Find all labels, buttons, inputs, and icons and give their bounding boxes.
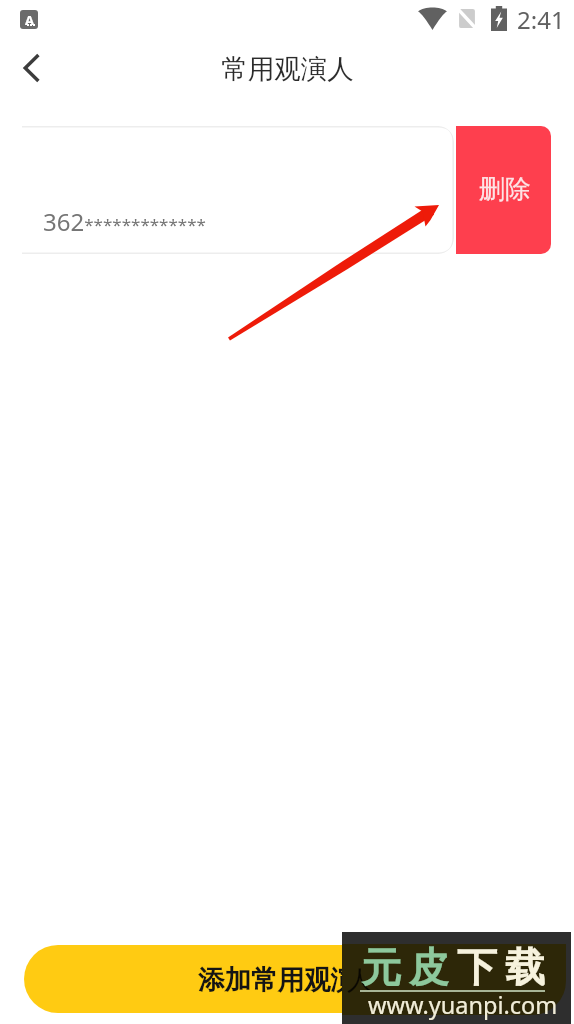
staticText: www.yuanpi.com bbox=[368, 989, 558, 1021]
button[interactable]: Back bbox=[0, 38, 62, 98]
staticText: 添加常用观演人 bbox=[198, 963, 384, 996]
staticText: 下载 bbox=[453, 942, 549, 992]
staticText: 2:41 bbox=[517, 3, 565, 36]
staticText: 362************* bbox=[43, 205, 206, 238]
button[interactable]: 添加常用观演人 bbox=[24, 945, 550, 1013]
staticText: 元皮 bbox=[357, 942, 453, 992]
staticText: 删除 bbox=[479, 173, 531, 206]
staticText: A bbox=[25, 11, 34, 29]
button[interactable]: 删除 bbox=[456, 126, 551, 254]
staticText: 人 bbox=[347, 964, 373, 997]
staticText: 常用观演人 bbox=[221, 52, 354, 85]
button[interactable]: 362************* bbox=[22, 126, 454, 254]
